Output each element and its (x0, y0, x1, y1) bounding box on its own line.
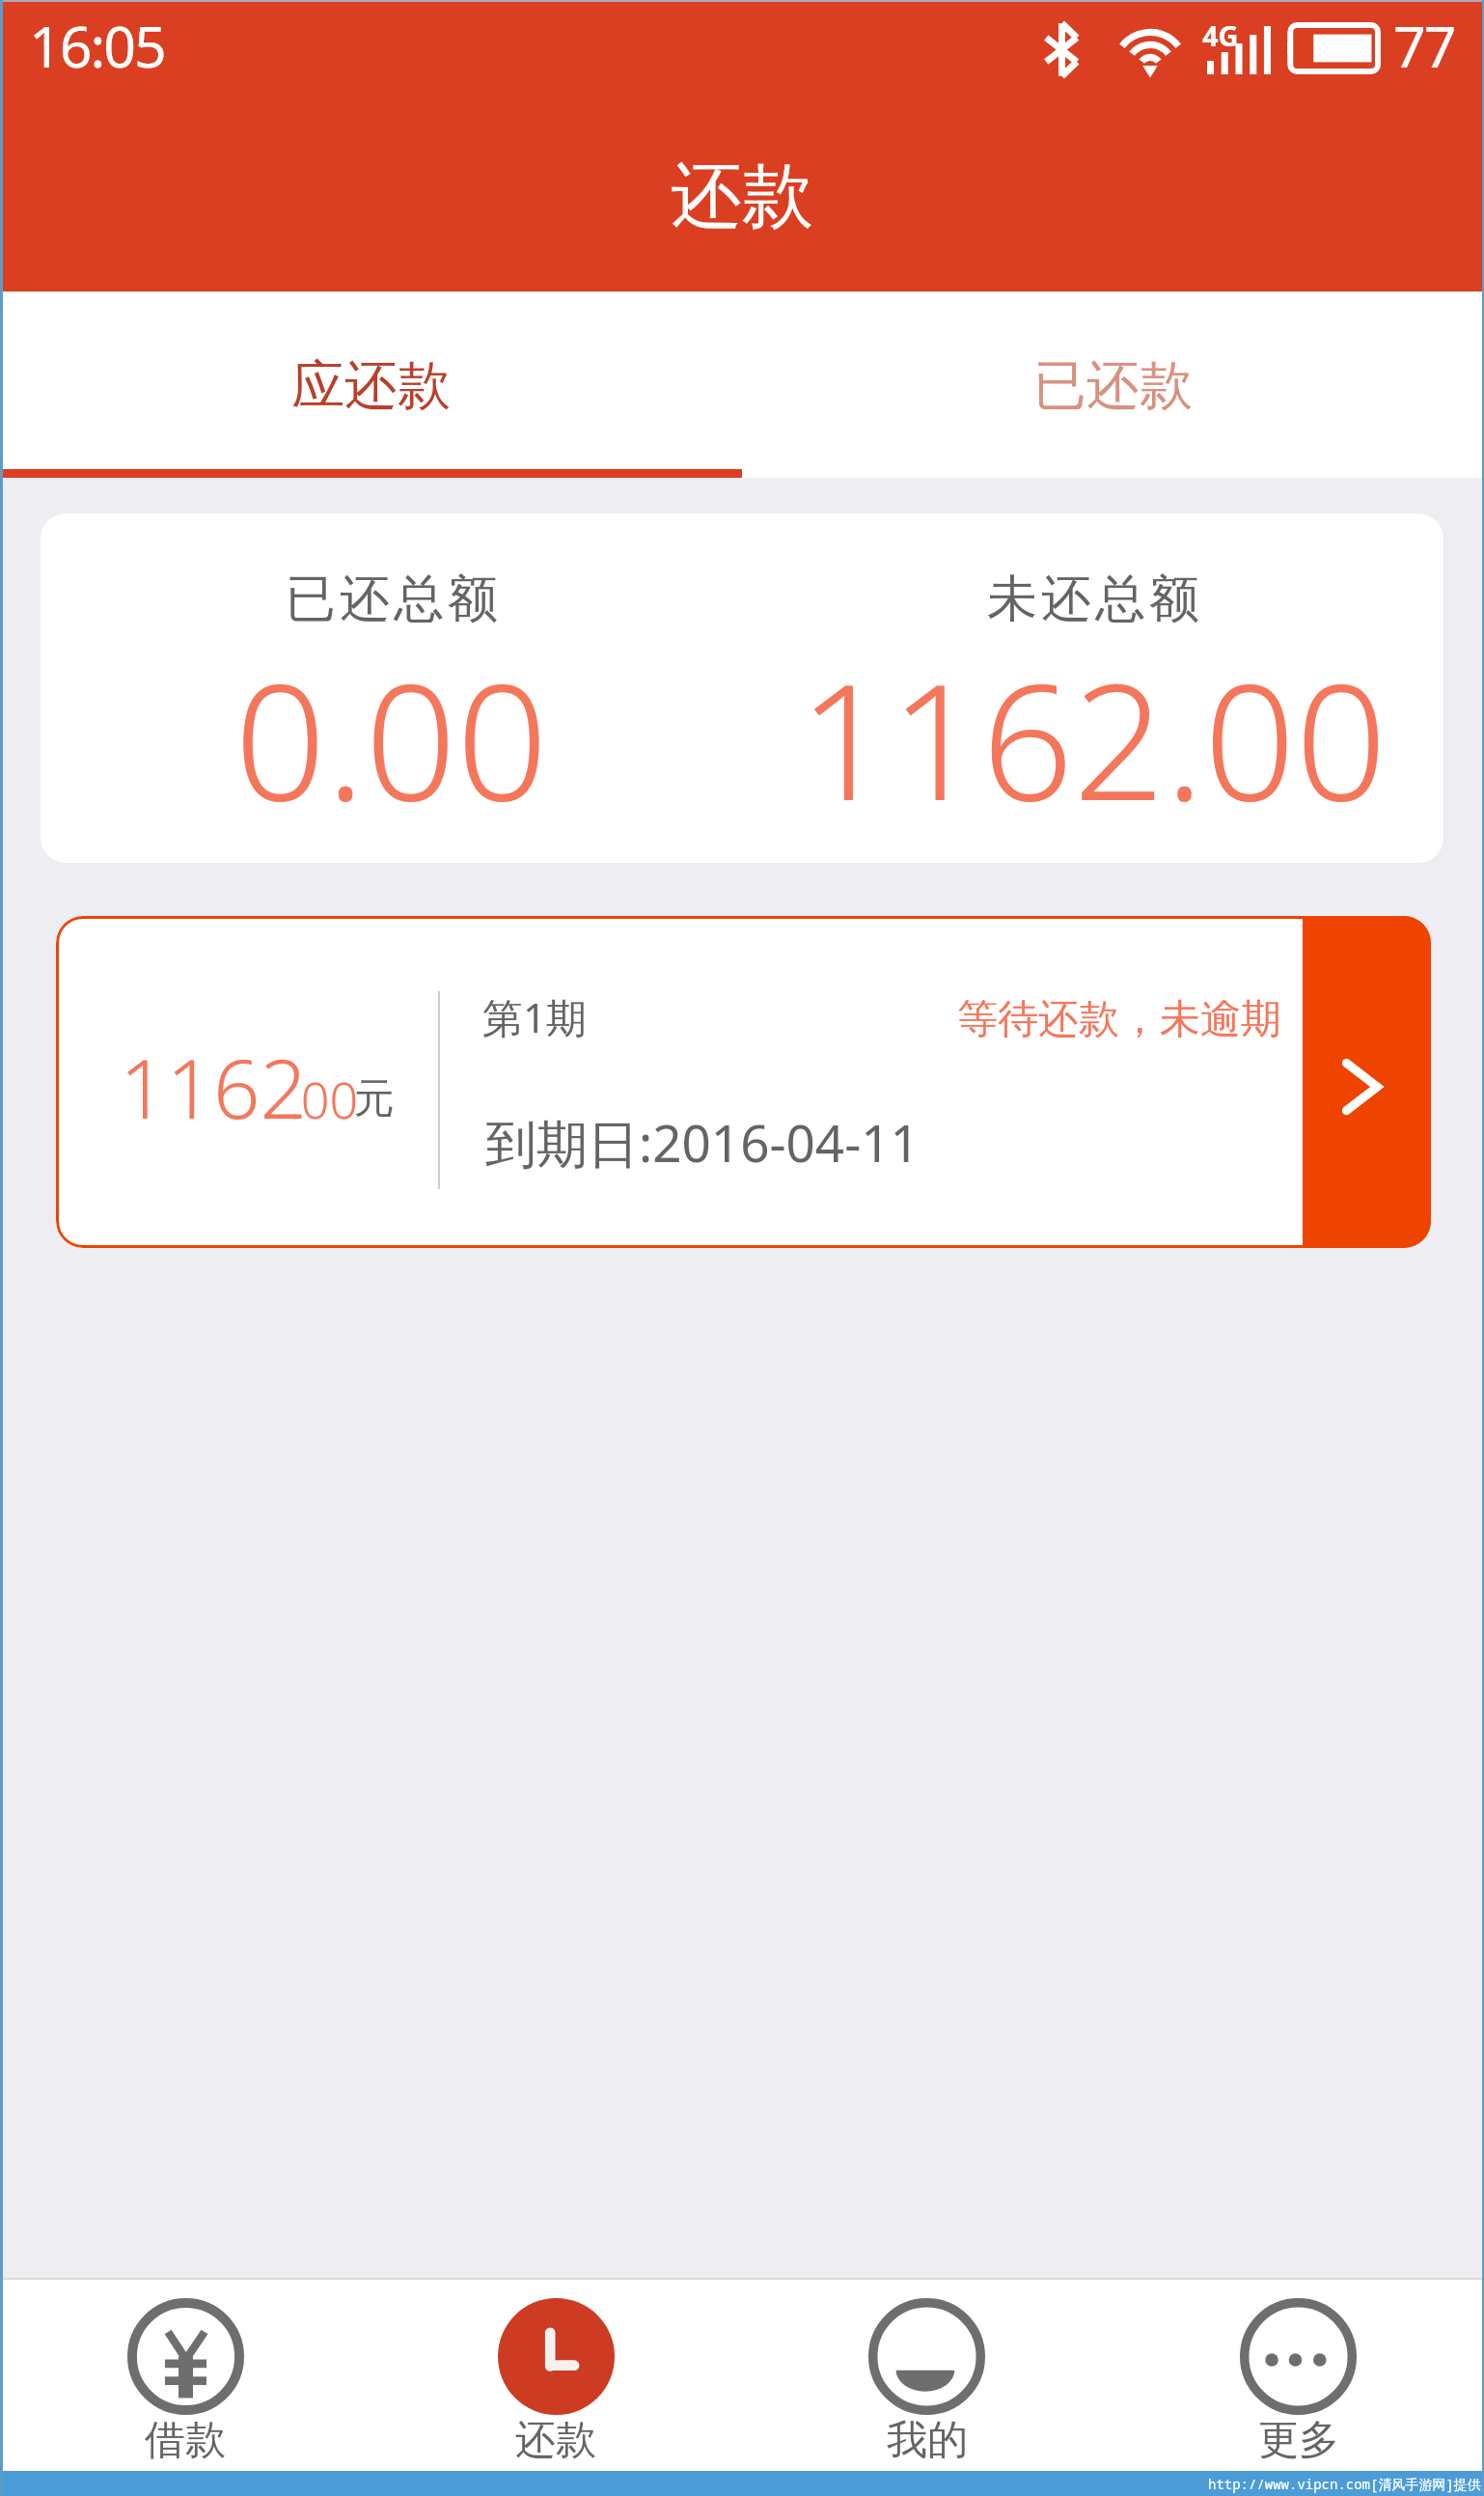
staticText: 第1期 (482, 989, 588, 1044)
button[interactable]: 1162 (56, 916, 1431, 1248)
button[interactable]: 更多 (1113, 2278, 1484, 2471)
staticText: 元 (354, 1073, 395, 1124)
other: Mobile signal full (1207, 26, 1271, 74)
staticText: 还款 (671, 152, 813, 241)
other: Battery 77 percent (1287, 25, 1378, 71)
button[interactable]: 还款 (371, 2278, 741, 2471)
button[interactable]: 应还款 (0, 291, 742, 478)
staticText: 未还总额 (985, 568, 1201, 631)
button[interactable]: 借款 (0, 2278, 371, 2471)
staticText: 还款 (515, 2415, 596, 2466)
staticText: 0.00 (234, 629, 548, 847)
staticText: http://www.vipcn.com[清风手游网]提供 (1208, 2475, 1481, 2493)
button[interactable]: 已还款 (742, 291, 1484, 478)
other: Wi-Fi connected (1114, 18, 1186, 78)
staticText: 4G (1202, 16, 1239, 54)
staticText: 1162.00 (799, 629, 1388, 847)
staticText: 77 (1393, 7, 1455, 84)
other: Bluetooth on (1044, 22, 1080, 77)
staticText: 应还款 (291, 352, 451, 419)
button[interactable]: 我的 (741, 2278, 1113, 2471)
staticText: 更多 (1258, 2415, 1339, 2466)
staticText: 我的 (887, 2415, 968, 2466)
button[interactable]: Open instalment detail (1303, 916, 1431, 1248)
staticText: 1162 (120, 1031, 308, 1143)
staticText: 已还款 (1033, 352, 1193, 419)
staticText: 借款 (145, 2415, 226, 2466)
staticText: 16:05 (29, 7, 165, 84)
staticText: .00 (289, 1065, 359, 1133)
staticText: 已还总额 (284, 568, 500, 631)
staticText: 到期日:2016-04-11 (485, 1107, 920, 1177)
staticText: 等待还款，未逾期 (957, 994, 1281, 1045)
